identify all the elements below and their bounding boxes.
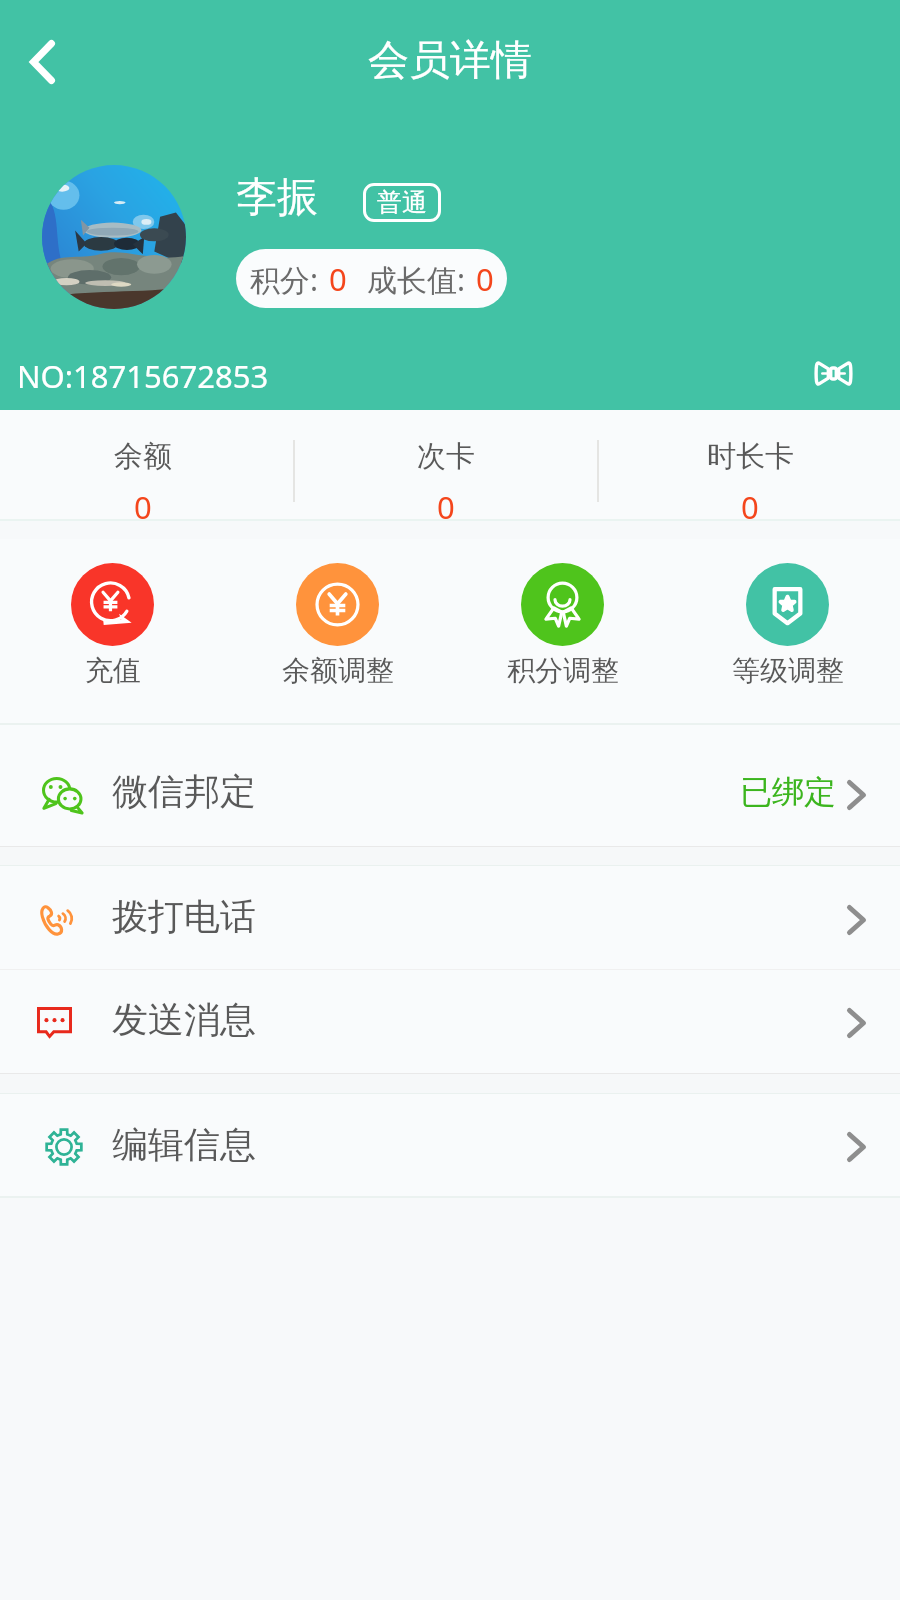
staticText: 发送消息: [112, 997, 256, 1042]
staticText: 会员详情: [368, 35, 532, 87]
staticText: 0: [437, 486, 455, 519]
button[interactable]: 微信邦定: [0, 725, 900, 846]
staticText: 余额调整: [282, 653, 394, 688]
button[interactable]: 次卡: [293, 410, 599, 519]
staticText: 等级调整: [732, 653, 844, 688]
staticText: 0: [329, 258, 347, 300]
staticText: 余额: [114, 438, 172, 475]
staticText: 李振: [236, 172, 318, 224]
button[interactable]: 等级调整: [675, 539, 900, 688]
button[interactable]: 积分调整: [450, 539, 675, 688]
staticText: NO:18715672853: [17, 355, 269, 397]
staticText: 编辑信息: [112, 1122, 256, 1167]
staticText: 普通: [377, 187, 427, 218]
staticText: 已绑定: [740, 772, 836, 812]
button[interactable]: 时长卡: [600, 410, 900, 519]
staticText: 拨打电话: [112, 894, 256, 939]
staticText: 0: [134, 486, 152, 519]
button[interactable]: Back: [1, 21, 83, 103]
staticText: 次卡: [417, 438, 475, 475]
button[interactable]: 余额调整: [225, 539, 450, 688]
button[interactable]: 编辑信息: [0, 1094, 900, 1196]
staticText: 积分调整: [507, 653, 619, 688]
button[interactable]: Bow tie: [800, 340, 866, 406]
button[interactable]: 积分:: [236, 249, 507, 308]
button[interactable]: 充值: [0, 539, 225, 688]
staticText: 积分:: [250, 259, 319, 300]
staticText: 0: [476, 258, 494, 300]
staticText: 0: [741, 486, 759, 519]
button[interactable]: 拨打电话: [0, 866, 900, 969]
staticText: 时长卡: [707, 438, 794, 475]
staticText: 成长值:: [367, 259, 466, 300]
button[interactable]: 余额: [0, 410, 286, 519]
button[interactable]: 发送消息: [0, 970, 900, 1073]
staticText: 微信邦定: [112, 769, 256, 814]
button[interactable]: 普通: [363, 183, 441, 222]
staticText: 充值: [85, 653, 141, 688]
